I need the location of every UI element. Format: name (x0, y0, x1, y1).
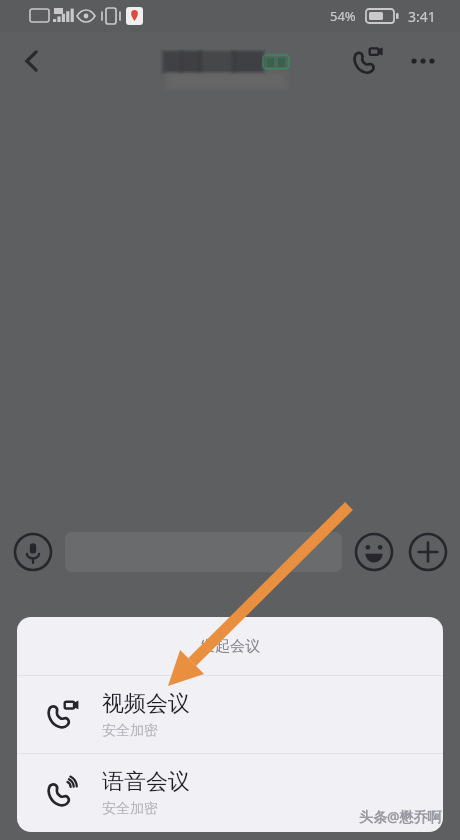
button[interactable]: Back (8, 37, 56, 85)
button[interactable]: Voice message (11, 530, 55, 574)
staticText: 安全加密 (102, 722, 158, 740)
staticText: 头条@懋乔啊 (359, 807, 442, 826)
staticText: 3:41 (408, 7, 436, 26)
button[interactable]: 语音会议 (17, 754, 443, 831)
button[interactable]: More options (398, 36, 448, 86)
staticText: 语音会议 (102, 768, 190, 796)
staticText: 54% (330, 7, 356, 25)
button[interactable] (65, 532, 342, 572)
staticText: 安全加密 (102, 800, 158, 818)
staticText: 视频会议 (102, 690, 190, 718)
button[interactable]: More functions (406, 530, 450, 574)
staticText: 发起会议 (200, 637, 260, 656)
button[interactable]: Video call (344, 36, 394, 86)
button[interactable]: 视频会议 (17, 676, 443, 753)
button[interactable]: Emoji (352, 530, 396, 574)
